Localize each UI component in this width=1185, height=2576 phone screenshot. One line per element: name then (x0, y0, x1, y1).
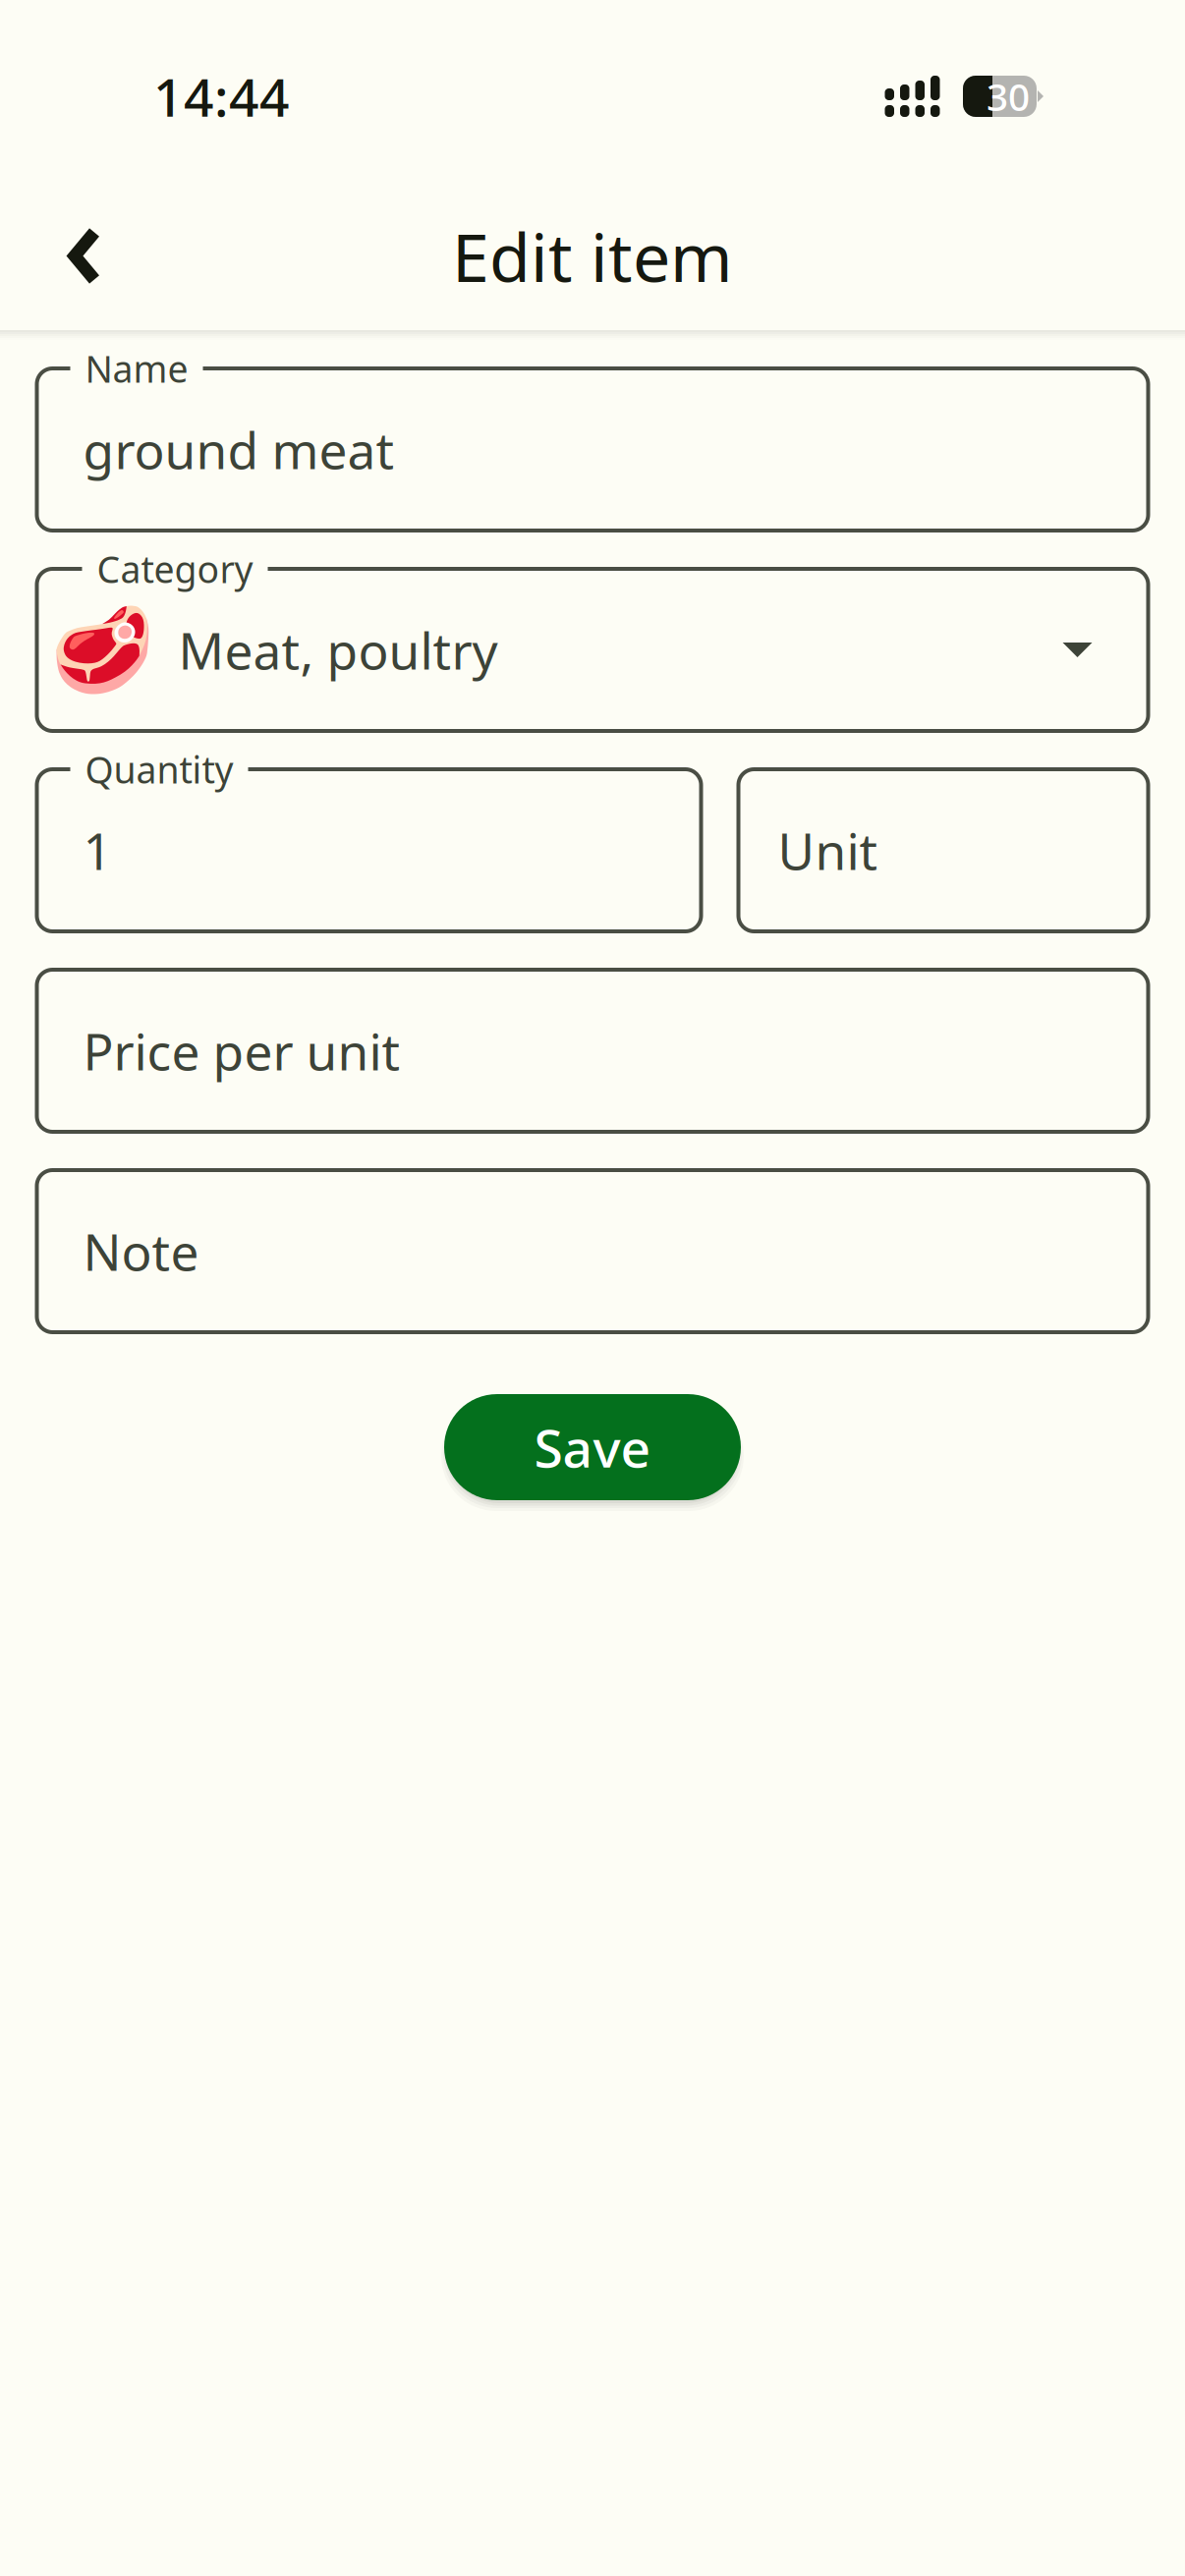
staticText: Meat, poultry (178, 616, 498, 684)
staticText: ground meat (83, 415, 395, 484)
staticText: Quantity (85, 744, 233, 794)
button[interactable]: Save (435, 1385, 750, 1509)
staticText: 1 (83, 816, 112, 885)
staticText: Save (534, 1411, 651, 1483)
button[interactable]: Back (35, 207, 134, 305)
button[interactable]: 🥩 (37, 569, 1148, 731)
staticText: 🥩 (50, 601, 154, 699)
staticText: 14:44 (153, 61, 290, 132)
staticText: Unit (778, 816, 878, 885)
staticText: Category (97, 544, 253, 594)
staticText: 30 (987, 70, 1030, 122)
staticText: Price per unit (83, 1016, 400, 1085)
staticText: Name (85, 343, 188, 393)
staticText: Note (83, 1217, 199, 1285)
staticText: Edit item (452, 210, 733, 301)
